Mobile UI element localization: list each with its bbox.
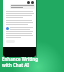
button[interactable]: Menu bbox=[31, 1, 34, 4]
button[interactable]: Profile bbox=[27, 1, 30, 4]
staticText: with Chat AI bbox=[2, 62, 30, 68]
staticText: Enhance Writing bbox=[2, 56, 39, 62]
